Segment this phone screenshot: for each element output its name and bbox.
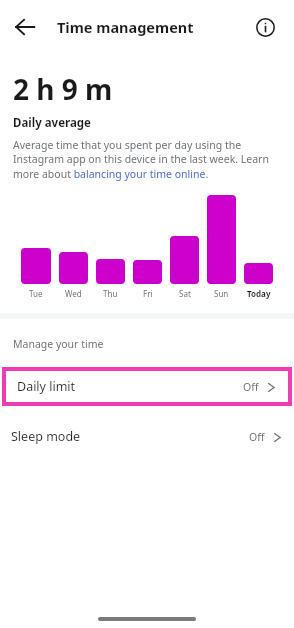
- staticText: Time management: [57, 17, 194, 37]
- staticText: Daily average: [13, 115, 91, 131]
- staticText: Off: [243, 380, 259, 394]
- staticText: Fri: [143, 288, 153, 299]
- staticText: Sleep mode: [11, 428, 81, 445]
- staticText: Sun: [214, 288, 229, 299]
- staticText: Today: [247, 288, 271, 299]
- button[interactable]: Sleep mode: [0, 420, 294, 453]
- staticText: 2 h 9 m: [13, 70, 113, 108]
- staticText: Daily limit: [17, 378, 76, 395]
- staticText: Average time that you spent per day usin…: [13, 138, 278, 181]
- staticText: Sat: [179, 288, 191, 299]
- button[interactable]: Back: [8, 10, 42, 44]
- button[interactable]: Daily limit: [2, 367, 292, 406]
- staticText: Tue: [29, 288, 43, 299]
- staticText: Wed: [65, 288, 82, 299]
- button[interactable]: Information: [248, 10, 282, 44]
- staticText: Manage your time: [13, 337, 104, 351]
- staticText: Off: [249, 430, 265, 444]
- staticText: Thu: [103, 288, 118, 299]
